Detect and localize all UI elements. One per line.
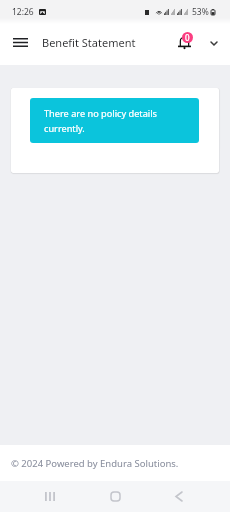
staticText: 0 — [185, 32, 190, 43]
button[interactable]: Menu — [0, 22, 41, 63]
button[interactable]: Recent apps — [30, 481, 70, 512]
staticText: 12:26 — [12, 6, 34, 18]
button[interactable]: Notifications — [170, 28, 200, 58]
staticText: 53% — [192, 6, 209, 18]
staticText: There are no policy details currently. — [44, 107, 191, 135]
button[interactable]: Back — [159, 481, 199, 512]
staticText: Benefit Statement — [42, 35, 136, 50]
staticText: © 2024 Powered by Endura Solutions. — [11, 457, 179, 470]
button[interactable]: Home — [95, 481, 135, 512]
button[interactable]: Expand menu — [200, 29, 228, 57]
